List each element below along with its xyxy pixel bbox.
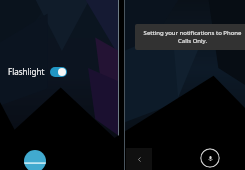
staticText: Setting your notifications to Phone Call… [139,29,245,45]
button[interactable]: Setting your notifications to Phone Call… [135,24,245,50]
button[interactable]: Flashlight [4,63,71,80]
button[interactable]: Back [126,148,152,170]
button[interactable]: App icon [24,150,46,170]
staticText: Flashlight [8,66,45,77]
button[interactable]: Voice search [200,148,220,168]
